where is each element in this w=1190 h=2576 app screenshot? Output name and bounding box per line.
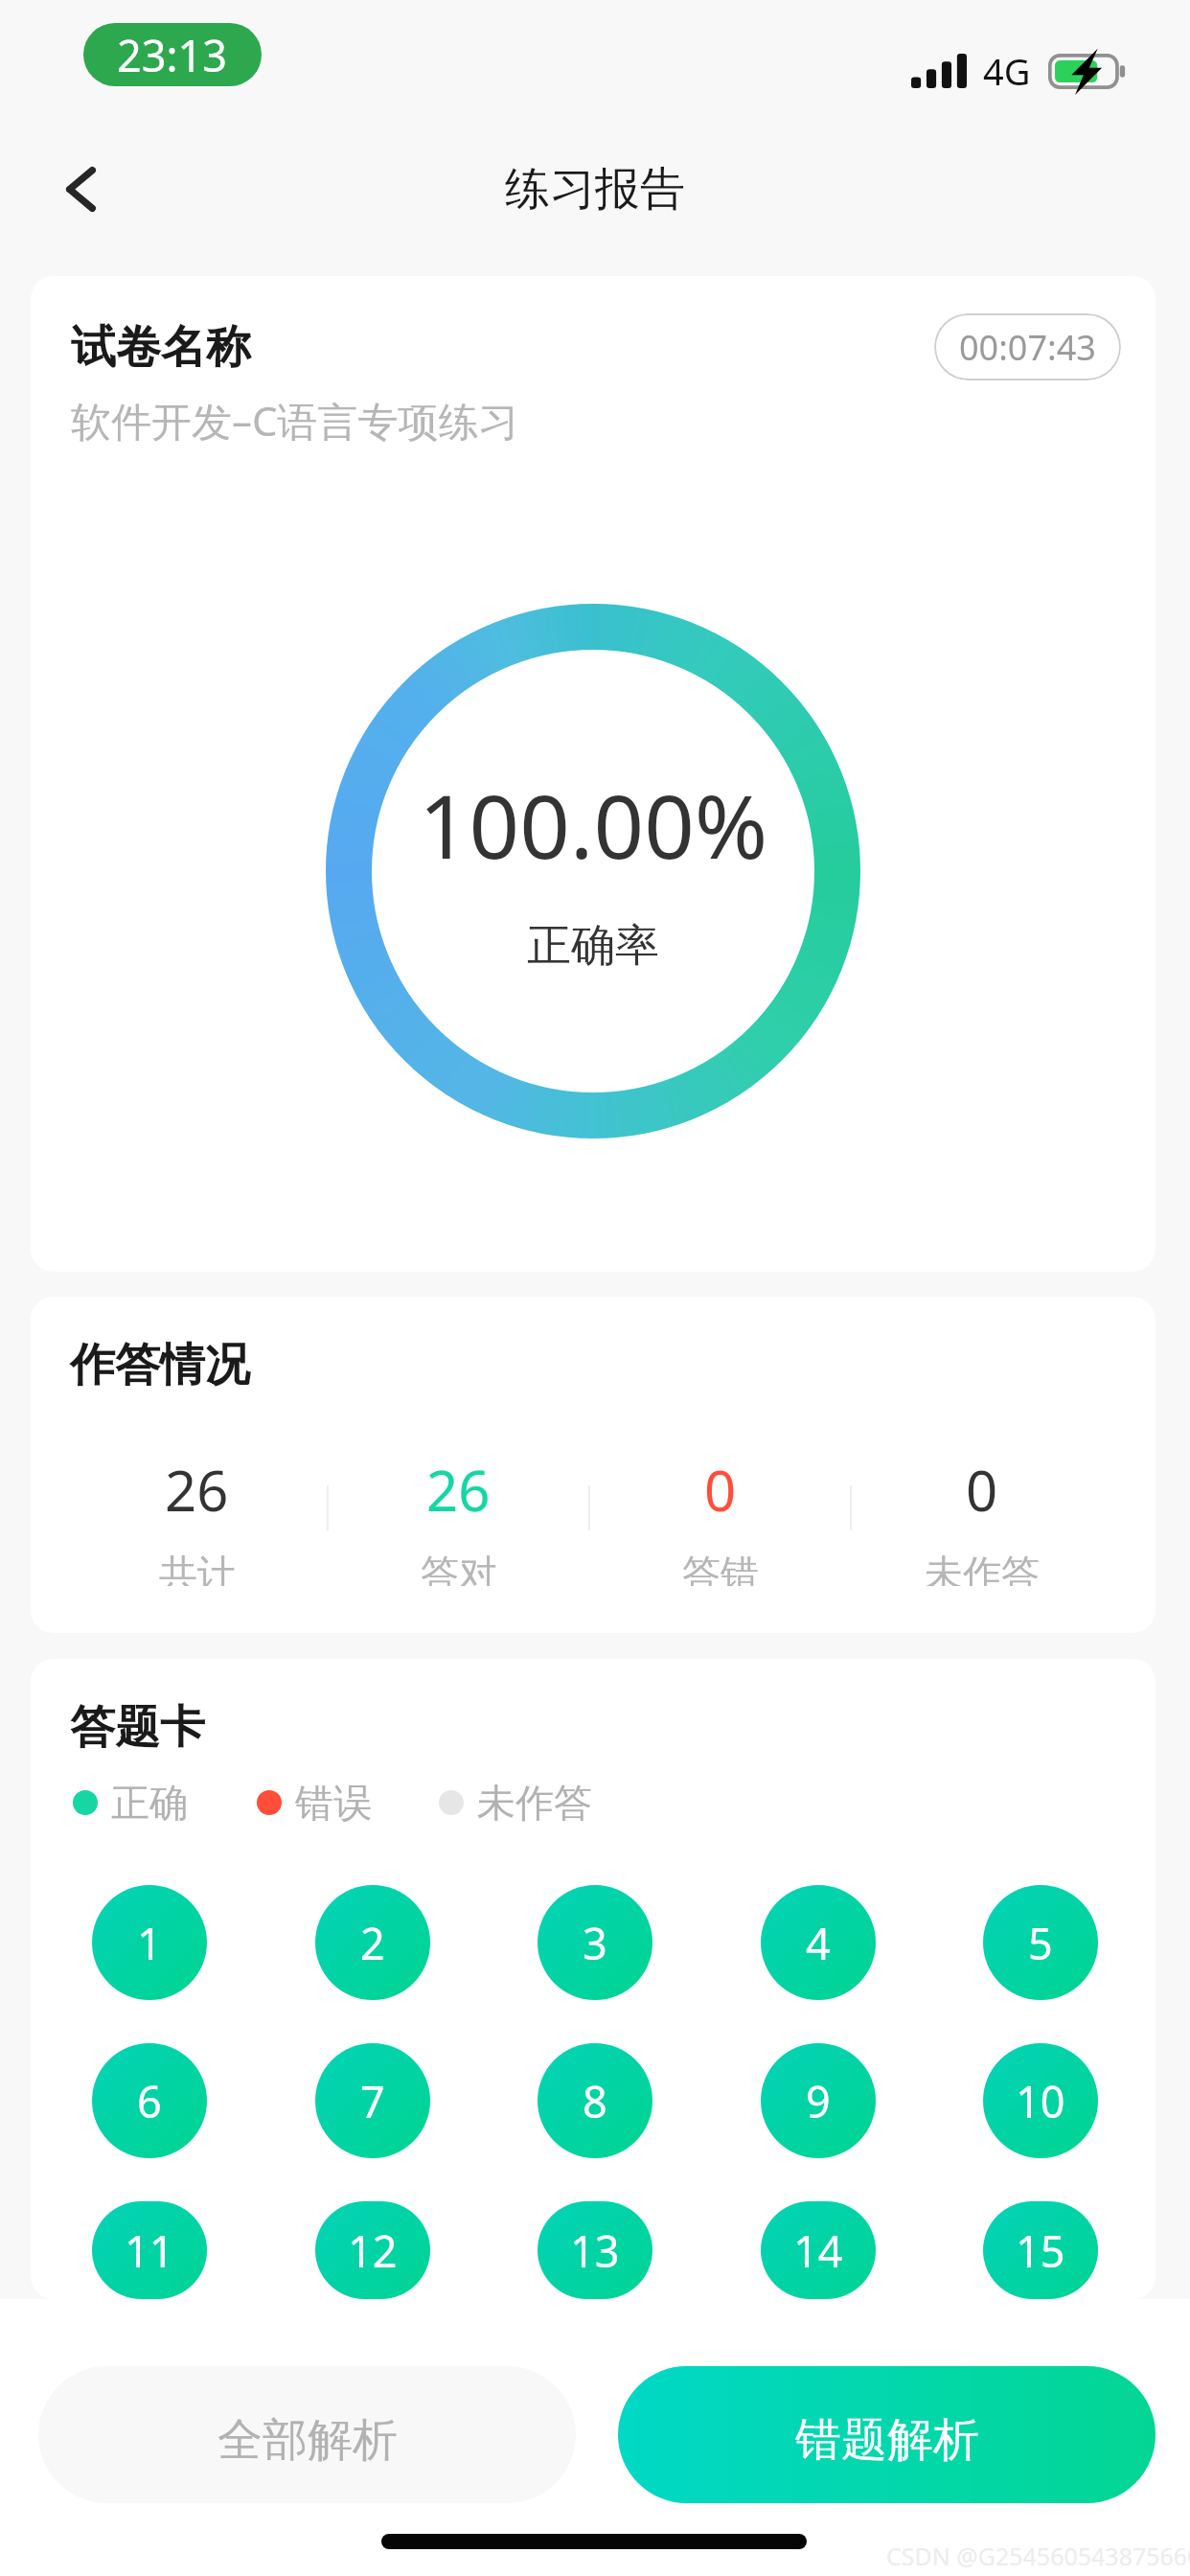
button[interactable]: 5 bbox=[983, 1885, 1098, 2000]
staticText: 8 bbox=[583, 2072, 607, 2130]
button[interactable]: 4 bbox=[761, 1885, 876, 2000]
staticText: 错误 bbox=[295, 1779, 372, 1827]
staticText: 共计 bbox=[159, 1550, 236, 1586]
button[interactable]: 13 bbox=[538, 2201, 652, 2299]
staticText: 错题解析 bbox=[795, 2411, 979, 2469]
button[interactable]: 2 bbox=[315, 1885, 430, 2000]
button[interactable]: 3 bbox=[538, 1885, 652, 2000]
staticText: 4 bbox=[806, 1914, 831, 1972]
staticText: 试卷名称 bbox=[71, 319, 251, 376]
button[interactable]: 8 bbox=[538, 2043, 652, 2158]
staticText: 7 bbox=[360, 2072, 385, 2130]
staticText: 作答情况 bbox=[70, 1337, 250, 1393]
staticText: 答对 bbox=[421, 1550, 497, 1586]
staticText: 10 bbox=[1016, 2072, 1065, 2130]
staticText: 答题卡 bbox=[70, 1699, 205, 1756]
button[interactable]: Back bbox=[34, 143, 126, 235]
staticText: 26 bbox=[426, 1452, 491, 1528]
staticText: 100.00% bbox=[419, 765, 768, 885]
staticText: 15 bbox=[1016, 2221, 1065, 2280]
button[interactable]: 9 bbox=[761, 2043, 876, 2158]
staticText: 2 bbox=[360, 1914, 385, 1972]
staticText: 26 bbox=[165, 1452, 229, 1528]
staticText: 正确率 bbox=[527, 918, 659, 974]
staticText: 答错 bbox=[682, 1550, 759, 1586]
staticText: 1 bbox=[137, 1914, 162, 1972]
button[interactable]: 12 bbox=[315, 2201, 430, 2299]
staticText: 11 bbox=[125, 2221, 174, 2280]
staticText: 未作答 bbox=[477, 1779, 592, 1827]
staticText: 3 bbox=[583, 1914, 607, 1972]
button[interactable]: 15 bbox=[983, 2201, 1098, 2299]
button[interactable]: 14 bbox=[761, 2201, 876, 2299]
staticText: 6 bbox=[137, 2072, 162, 2130]
button[interactable]: 1 bbox=[92, 1885, 207, 2000]
staticText: 0 bbox=[704, 1452, 737, 1528]
staticText: 0 bbox=[966, 1452, 998, 1528]
staticText: 4G bbox=[983, 46, 1031, 96]
button[interactable]: 11 bbox=[92, 2201, 207, 2299]
staticText: 正确 bbox=[111, 1779, 188, 1827]
staticText: 全部解析 bbox=[217, 2412, 398, 2469]
staticText: 12 bbox=[348, 2221, 398, 2280]
staticText: 9 bbox=[806, 2072, 831, 2130]
staticText: CSDN @G254560543875660 bbox=[886, 2540, 1190, 2572]
staticText: 未作答 bbox=[925, 1550, 1040, 1586]
staticText: 软件开发–C语言专项练习 bbox=[71, 393, 519, 448]
button[interactable]: 6 bbox=[92, 2043, 207, 2158]
staticText: 00:07:43 bbox=[959, 324, 1096, 371]
staticText: 23:13 bbox=[117, 26, 228, 84]
button[interactable]: 全部解析 bbox=[38, 2366, 576, 2503]
button[interactable]: 7 bbox=[315, 2043, 430, 2158]
button[interactable]: 错题解析 bbox=[618, 2366, 1156, 2503]
staticText: 练习报告 bbox=[505, 161, 685, 218]
button[interactable]: 10 bbox=[983, 2043, 1098, 2158]
staticText: 14 bbox=[793, 2221, 843, 2280]
staticText: 13 bbox=[570, 2221, 620, 2280]
staticText: 5 bbox=[1028, 1914, 1053, 1972]
